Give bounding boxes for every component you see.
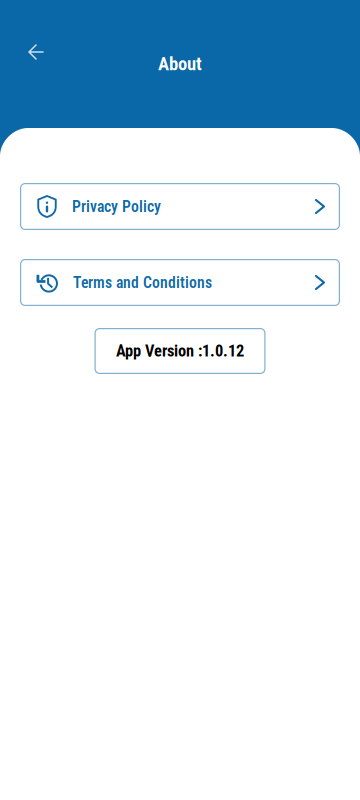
button[interactable]: Back (18, 34, 54, 70)
button[interactable]: Privacy Policy (20, 183, 340, 230)
staticText: Privacy Policy (72, 197, 161, 216)
button[interactable]: Terms and Conditions (20, 259, 340, 306)
staticText: Terms and Conditions (73, 273, 212, 292)
staticText: App Version :1.0.12 (116, 341, 244, 361)
staticText: About (158, 53, 202, 75)
